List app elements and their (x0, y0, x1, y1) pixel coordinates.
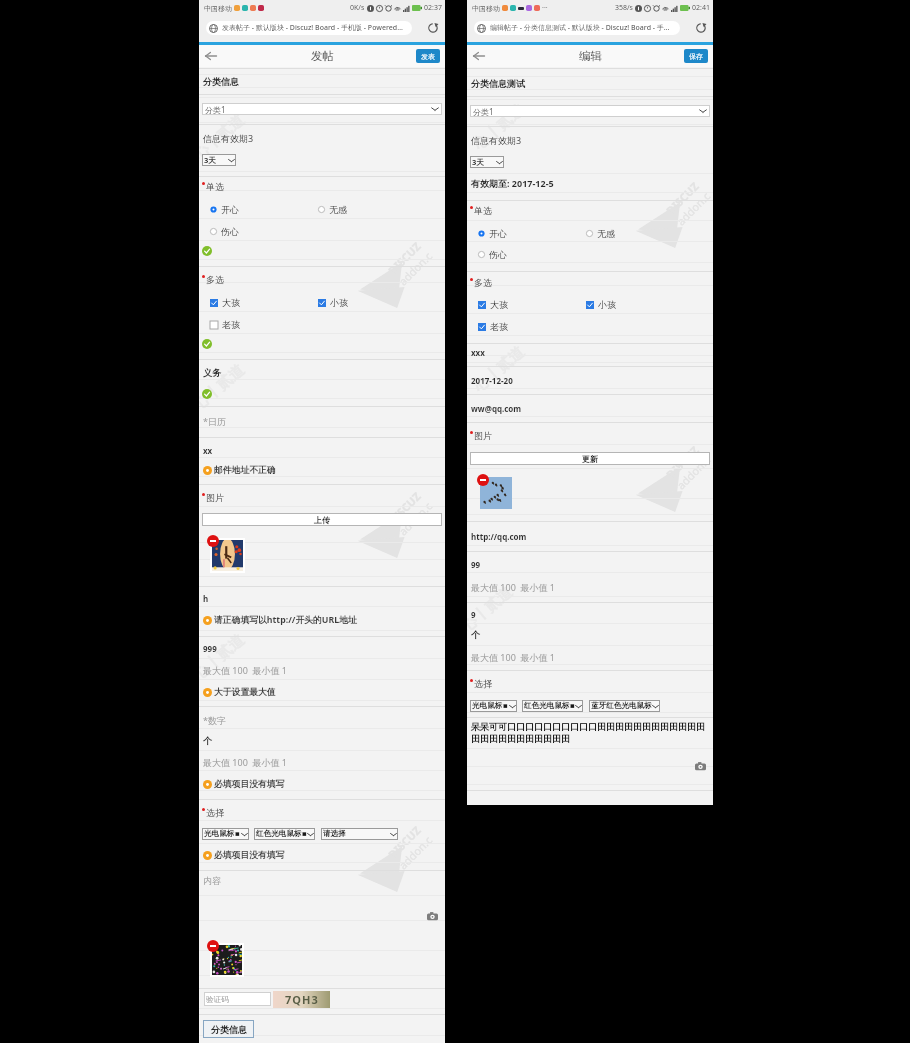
staticText: ww@qq.com (471, 403, 522, 414)
button[interactable]: 3天 (470, 156, 504, 168)
staticText: 红色光电鼠标▪ (256, 829, 307, 839)
staticText: 3天 (472, 157, 484, 167)
staticText: 9 (471, 609, 476, 620)
staticText: 大于设置最大值 (214, 687, 276, 698)
staticText: 无感 (597, 228, 615, 239)
button[interactable]: Valid (202, 246, 212, 256)
button[interactable]: 编辑帖子 - 分类信息测试 - 默认版块 - Discuz! Board - 手… (474, 21, 680, 35)
staticText: 心丨贰道 (470, 343, 528, 396)
button[interactable]: 光电鼠标▪ (470, 700, 517, 712)
staticText: 个 (471, 629, 480, 640)
staticText: 单选 (474, 205, 492, 216)
staticText: 大孩 (490, 299, 508, 310)
button[interactable]: 小孩 (586, 299, 616, 310)
button[interactable]: Back (202, 47, 220, 65)
staticText: 02:41 (692, 3, 710, 13)
button[interactable]: 验证码 (204, 992, 271, 1006)
button[interactable]: Camera (427, 911, 438, 922)
staticText: 3天 (204, 155, 216, 165)
button[interactable]: 伤心 (478, 249, 507, 260)
staticText: 心丨贰道 (199, 111, 248, 164)
button[interactable]: 红色光电鼠标▪ (254, 828, 315, 840)
staticText: 最大值 100 最小值 1 (203, 756, 287, 768)
staticText: 红色光电鼠标▪ (524, 701, 575, 711)
staticText: 2017-12-20 (471, 375, 513, 386)
button[interactable]: 分类1 (202, 103, 442, 115)
staticText: 伤心 (489, 249, 507, 260)
button[interactable]: 老孩 (210, 319, 240, 330)
button[interactable]: 上传 (202, 513, 442, 526)
staticText: 心丨贰道 (467, 583, 516, 636)
staticText: DISCUZ (662, 178, 702, 218)
staticText: 02:37 (424, 3, 442, 13)
button[interactable]: 保存 (684, 49, 708, 63)
staticText: *日历 (203, 415, 226, 427)
button[interactable]: Valid (202, 339, 212, 349)
staticText: 请正确填写以http://开头的URL地址 (214, 614, 357, 626)
button[interactable]: 分类1 (470, 105, 710, 117)
button[interactable]: 发表 (416, 49, 440, 63)
button[interactable]: 请选择 (321, 828, 398, 840)
staticText: 选择 (474, 678, 492, 689)
staticText: 0K/s (350, 3, 365, 13)
button[interactable]: 3天 (202, 154, 236, 166)
staticText: 义务 (203, 367, 221, 378)
staticText: 999 (203, 643, 217, 654)
button[interactable]: 开心 (210, 204, 239, 215)
staticText: 开心 (221, 204, 239, 215)
button[interactable]: Remove image (207, 535, 219, 547)
staticText: 光电鼠标▪ (204, 829, 240, 839)
button[interactable]: 伤心 (210, 226, 239, 237)
staticText: addon.c (395, 498, 435, 538)
button[interactable]: Remove image (207, 940, 219, 952)
staticText: 中国移动 (472, 4, 500, 13)
staticText: 信息有效期3 (471, 134, 522, 146)
button[interactable]: Camera (695, 761, 706, 772)
staticText: 心丨贰道 (470, 101, 528, 154)
staticText: DISCUZ (384, 238, 424, 278)
staticText: 分类信息 (203, 76, 239, 87)
staticText: 99 (471, 559, 481, 570)
staticText: ··· (542, 3, 548, 13)
staticText: 请选择 (323, 829, 346, 839)
staticText: DISCUZ (662, 442, 702, 482)
staticText: 小孩 (330, 297, 348, 308)
button[interactable]: Valid (202, 389, 212, 399)
staticText: DISCUZ (384, 822, 424, 862)
button[interactable]: 小孩 (318, 297, 348, 308)
button[interactable]: 光电鼠标▪ (202, 828, 249, 840)
button[interactable]: 老孩 (478, 321, 508, 332)
button[interactable]: Remove image (477, 474, 489, 486)
staticText: 7QH3 (285, 992, 319, 1007)
button[interactable]: 蓝牙红色光电鼠标 (589, 700, 660, 712)
staticText: 编辑 (579, 49, 602, 63)
button[interactable]: 开心 (478, 228, 507, 239)
staticText: 光电鼠标▪ (472, 701, 508, 711)
staticText: 多选 (474, 277, 492, 288)
staticText: 上传 (314, 515, 330, 525)
button[interactable]: Reload (694, 21, 708, 35)
staticText: 呆呆可可口口口口口口口口口口田田田田田田田田田田田田田田田田田田田田田田田 (471, 721, 707, 744)
button[interactable]: 大孩 (210, 297, 240, 308)
staticText: 最大值 100 最小值 1 (471, 581, 555, 593)
staticText: 发表帖子 - 默认版块 - Discuz! Board - 手机版 - Powe… (222, 23, 403, 33)
staticText: DISCUZ (384, 488, 424, 528)
button[interactable]: 大孩 (478, 299, 508, 310)
staticText: 发帖 (311, 49, 334, 63)
button[interactable]: Back (470, 47, 488, 65)
staticText: addon.c (673, 452, 713, 492)
button[interactable]: 发表帖子 - 默认版块 - Discuz! Board - 手机版 - Powe… (206, 21, 412, 35)
staticText: 邮件地址不正确 (214, 465, 276, 476)
staticText: 单选 (206, 181, 224, 192)
button[interactable]: 红色光电鼠标▪ (522, 700, 583, 712)
staticText: 图片 (206, 492, 224, 503)
button[interactable]: 分类信息 (203, 1020, 254, 1038)
staticText: 内容 (203, 875, 221, 886)
button[interactable]: 更新 (470, 452, 710, 465)
button[interactable]: 无感 (586, 228, 615, 239)
button[interactable]: Reload (426, 21, 440, 35)
button[interactable]: 无感 (318, 204, 347, 215)
staticText: 验证码 (206, 995, 229, 1004)
staticText: 中国移动 (204, 4, 232, 13)
staticText: 分类1 (473, 106, 494, 117)
